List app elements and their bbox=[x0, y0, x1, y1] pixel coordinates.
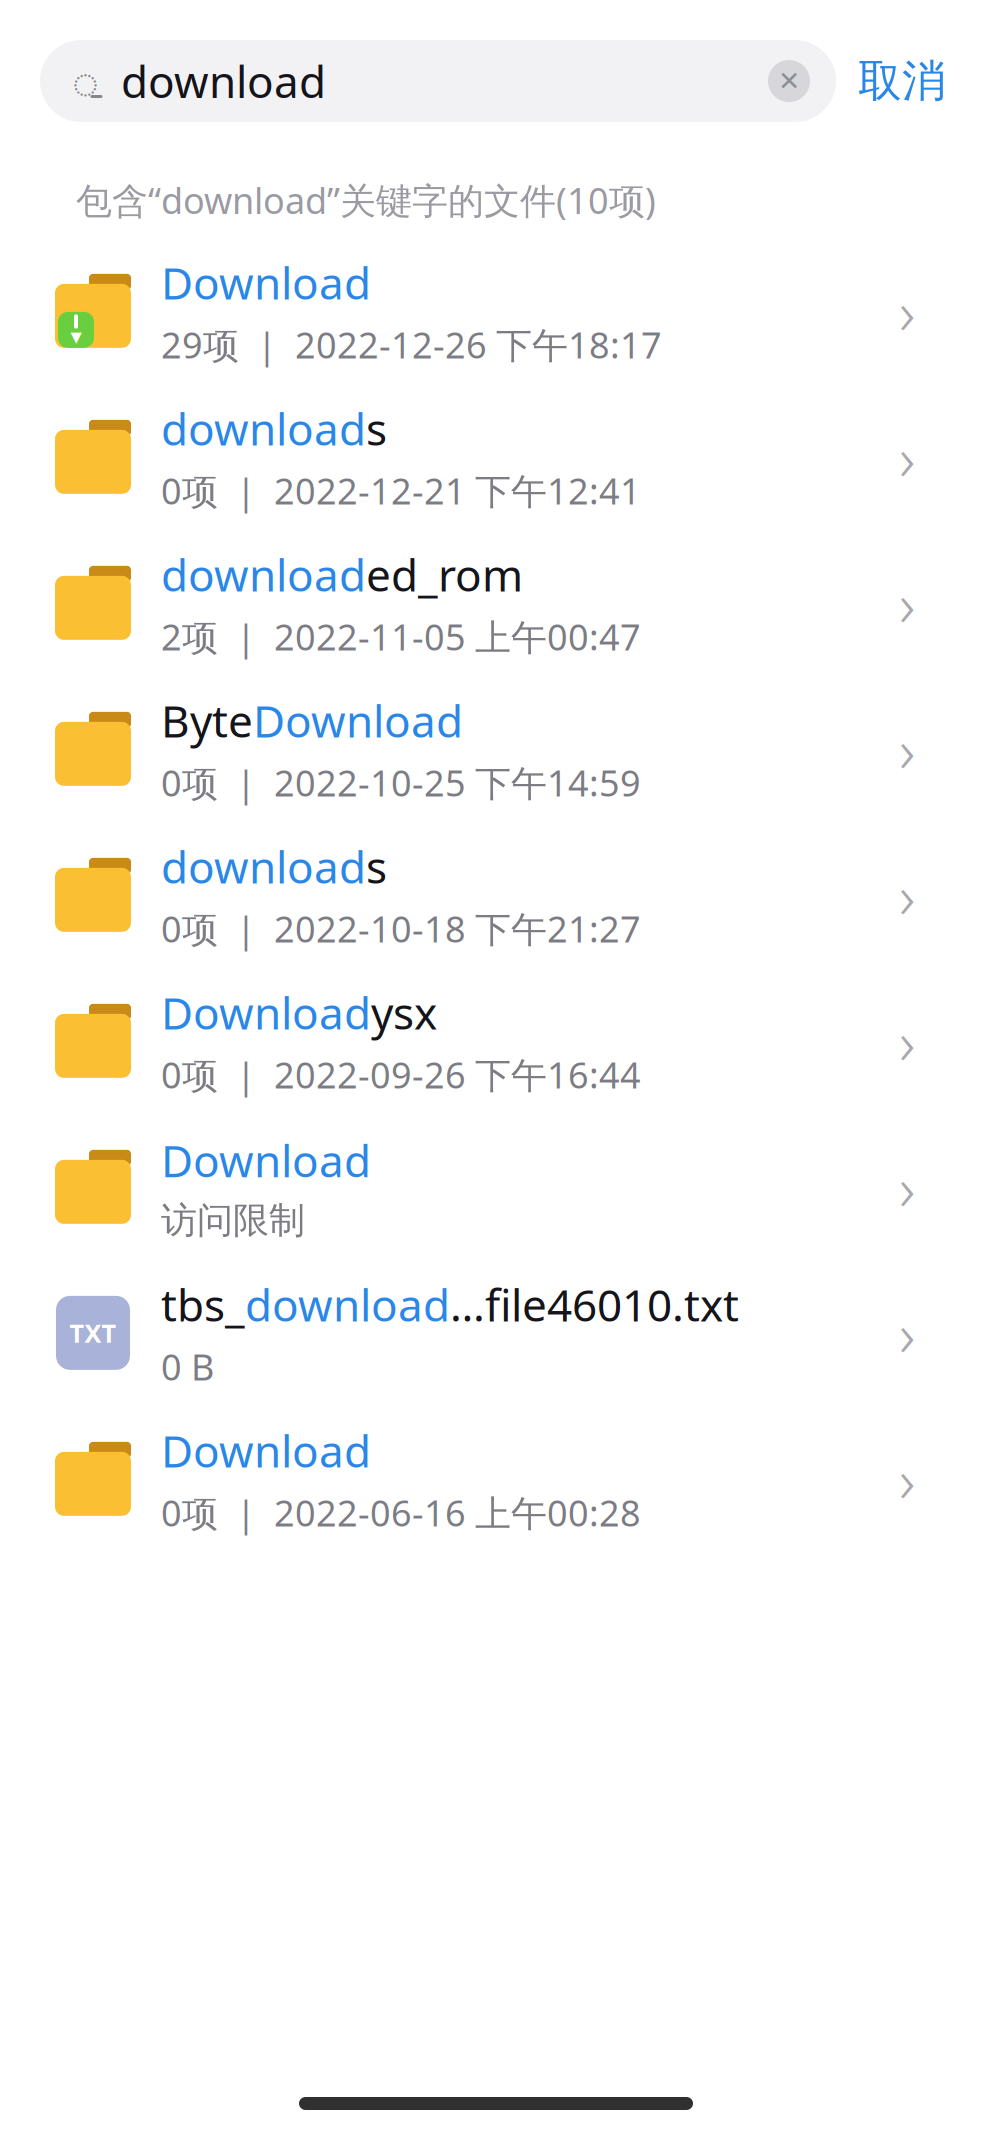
staticText: › bbox=[899, 562, 915, 643]
staticText: …file46010.txt bbox=[450, 1275, 739, 1334]
staticText: › bbox=[899, 1438, 915, 1519]
staticText: ◌ bbox=[72, 51, 99, 111]
button[interactable]: download bbox=[0, 822, 992, 968]
button[interactable]: Download bbox=[0, 1406, 992, 1552]
staticText: › bbox=[899, 1000, 915, 1081]
staticText: › bbox=[899, 270, 915, 351]
staticText: 2项 | 2022-11-05 上午00:47 bbox=[161, 613, 641, 660]
button[interactable]: ▼ bbox=[0, 238, 992, 384]
staticText: 0项 | 2022-10-25 下午14:59 bbox=[161, 759, 641, 806]
staticText: 0项 | 2022-06-16 上午00:28 bbox=[161, 1489, 641, 1536]
staticText: Byte bbox=[161, 691, 253, 750]
staticText: 0项 | 2022-12-21 下午12:41 bbox=[161, 467, 641, 514]
button[interactable]: download bbox=[0, 530, 992, 676]
staticText: download bbox=[161, 837, 366, 896]
staticText: › bbox=[899, 854, 915, 935]
staticText: › bbox=[899, 708, 915, 789]
staticText: ✕ bbox=[778, 66, 800, 96]
staticText: tbs_ bbox=[161, 1275, 245, 1334]
staticText: s bbox=[366, 837, 387, 896]
staticText: 29项 | 2022-12-26 下午18:17 bbox=[161, 321, 662, 368]
staticText: › bbox=[899, 1146, 915, 1227]
staticText: ▼ bbox=[70, 328, 81, 345]
staticText: download bbox=[245, 1275, 450, 1334]
staticText: Download bbox=[161, 983, 371, 1042]
staticText: ed_rom bbox=[366, 545, 523, 604]
staticText: 0 B bbox=[161, 1343, 214, 1390]
button[interactable]: TXT bbox=[0, 1260, 992, 1406]
staticText: download bbox=[161, 399, 366, 458]
staticText: Download bbox=[161, 1421, 371, 1480]
staticText: TXT bbox=[69, 1316, 116, 1350]
staticText: Download bbox=[161, 1131, 371, 1189]
staticText: 0项 | 2022-09-26 下午16:44 bbox=[161, 1051, 641, 1098]
button[interactable]: Download bbox=[0, 1114, 992, 1260]
button[interactable]: Clear search text bbox=[768, 60, 810, 102]
button[interactable]: Download bbox=[0, 968, 992, 1114]
button[interactable]: download bbox=[0, 384, 992, 530]
staticText: 访问限制 bbox=[161, 1198, 305, 1243]
button[interactable]: 取消 bbox=[836, 38, 968, 124]
staticText: 取消 bbox=[858, 54, 946, 108]
staticText: › bbox=[899, 1292, 915, 1373]
staticText: › bbox=[899, 416, 915, 497]
staticText: 0项 | 2022-10-18 下午21:27 bbox=[161, 905, 641, 952]
button[interactable]: Byte bbox=[0, 676, 992, 822]
staticText: Download bbox=[161, 253, 371, 312]
staticText: 包含“download”关键字的文件(10项) bbox=[76, 176, 656, 224]
staticText: s bbox=[366, 399, 387, 458]
staticText: download bbox=[161, 545, 366, 604]
staticText: Download bbox=[253, 691, 463, 750]
staticText: download bbox=[121, 52, 326, 110]
staticText: ysx bbox=[371, 983, 437, 1042]
